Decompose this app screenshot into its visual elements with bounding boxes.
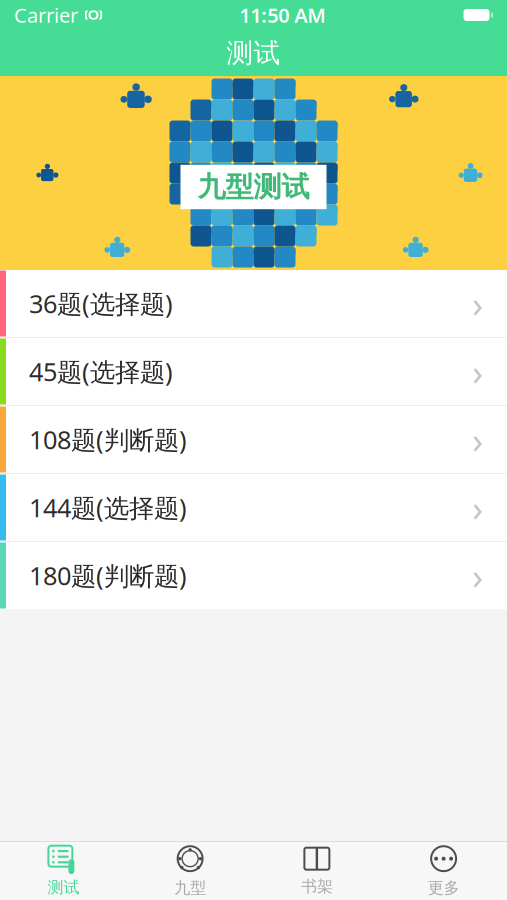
staticText: › <box>472 280 483 327</box>
button[interactable]: 更多 <box>380 842 507 900</box>
staticText: 144题(选择题) <box>29 491 187 524</box>
staticText: 书架 <box>301 877 333 896</box>
staticText: 更多 <box>428 878 460 898</box>
staticText: › <box>472 484 483 531</box>
staticText: › <box>472 348 483 395</box>
staticText: › <box>472 552 483 599</box>
button[interactable]: 45题(选择题) <box>0 338 507 405</box>
staticText: 36题(选择题) <box>29 287 173 320</box>
button[interactable]: 108题(判断题) <box>0 406 507 473</box>
button[interactable]: 180题(判断题) <box>0 542 507 609</box>
staticText: 测试 <box>226 37 280 69</box>
button[interactable]: 144题(选择题) <box>0 474 507 541</box>
button[interactable]: 36题(选择题) <box>0 270 507 337</box>
staticText: 九型测试 <box>197 170 309 204</box>
staticText: 108题(判断题) <box>29 423 187 456</box>
staticText: 11:50 AM <box>239 2 326 28</box>
button[interactable]: 测试 <box>0 842 127 900</box>
staticText: 测试 <box>47 878 79 897</box>
staticText: Carrier <box>14 2 78 28</box>
staticText: 九型 <box>174 878 206 898</box>
button[interactable]: 书架 <box>253 842 380 900</box>
staticText: 45题(选择题) <box>29 355 173 388</box>
staticText: › <box>472 416 483 463</box>
button[interactable]: 九型 <box>127 842 254 900</box>
staticText: 180题(判断题) <box>29 559 187 592</box>
